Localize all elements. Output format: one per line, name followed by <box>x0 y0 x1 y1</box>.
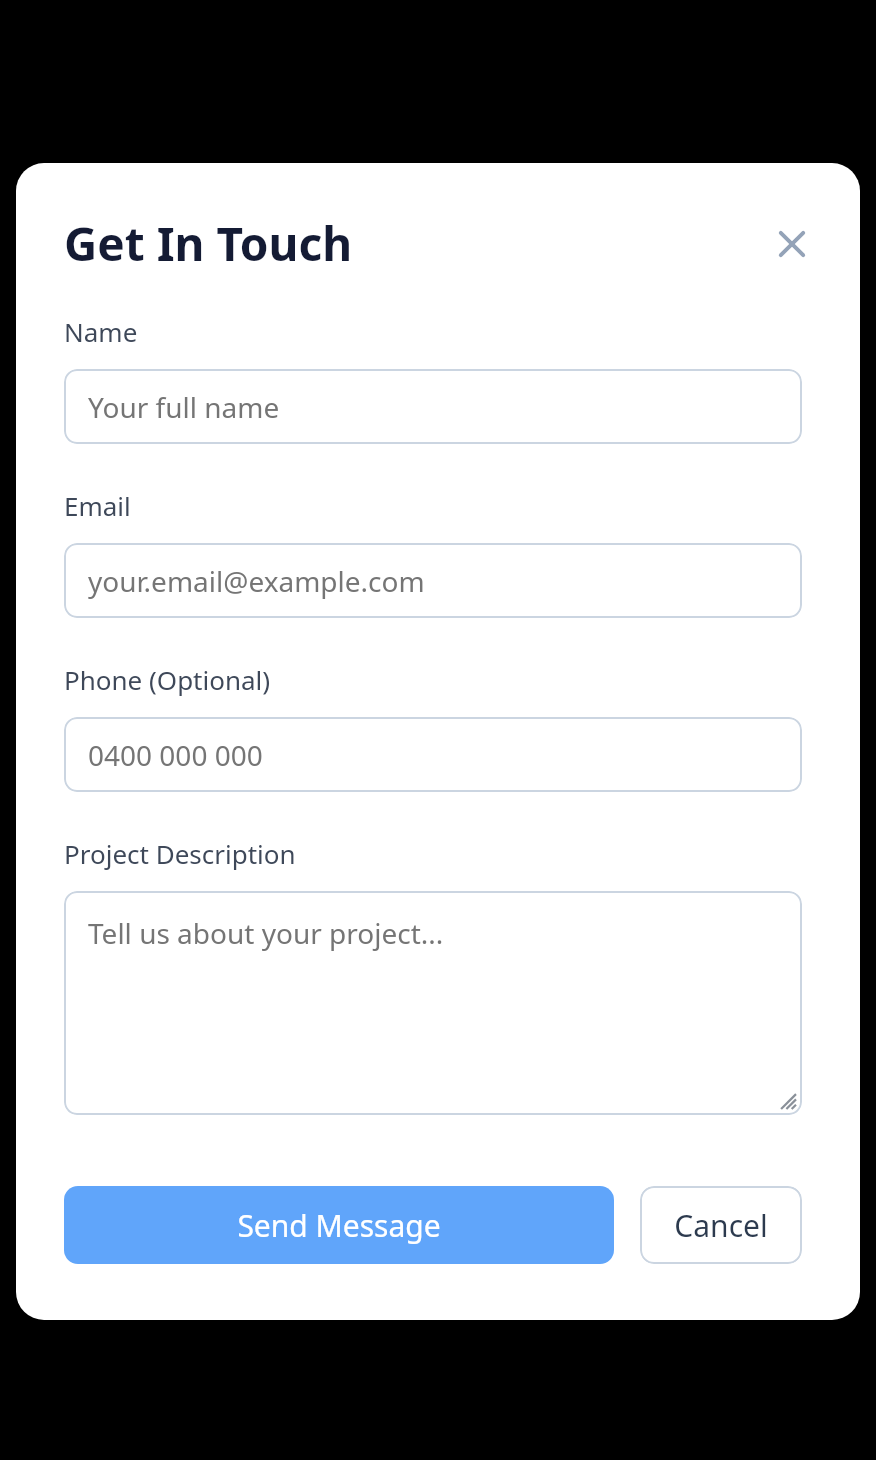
staticText: Phone (Optional) <box>64 662 271 697</box>
button[interactable]: Close <box>766 218 818 270</box>
button[interactable]: 0400 000 000 <box>64 717 802 792</box>
staticText: Send Message <box>237 1205 441 1246</box>
button[interactable]: Your full name <box>64 369 802 444</box>
button[interactable]: Send Message <box>64 1186 614 1264</box>
staticText: 0400 000 000 <box>88 736 263 774</box>
button[interactable]: Cancel <box>640 1186 802 1264</box>
button[interactable]: your.email@example.com <box>64 543 802 618</box>
staticText: Project Description <box>64 836 296 871</box>
staticText: Name <box>64 314 138 349</box>
staticText: Tell us about your project... <box>88 914 444 952</box>
button[interactable]: Tell us about your project... <box>64 891 802 1115</box>
staticText: your.email@example.com <box>88 562 425 600</box>
staticText: Cancel <box>674 1205 768 1246</box>
staticText: Get In Touch <box>64 212 353 275</box>
staticText: Email <box>64 488 131 523</box>
staticText: Your full name <box>88 388 280 426</box>
